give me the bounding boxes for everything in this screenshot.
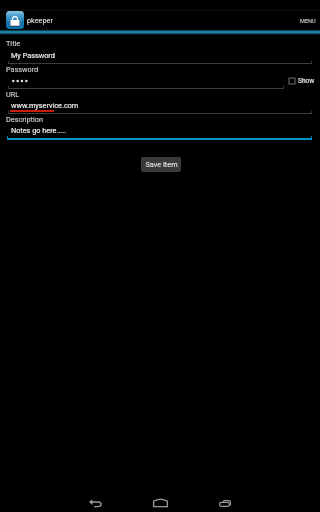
button[interactable]: Menu <box>296 13 320 29</box>
button[interactable]: Show <box>289 75 315 87</box>
staticText: Description <box>6 115 43 124</box>
staticText: URL <box>6 90 20 99</box>
button[interactable]: Home <box>129 486 191 512</box>
button[interactable]: Save Item <box>141 157 181 172</box>
button[interactable]: Recent apps <box>194 486 256 512</box>
staticText: pkeeper <box>27 16 53 25</box>
staticText: Title <box>6 39 21 48</box>
staticText: Password <box>6 65 39 74</box>
button[interactable]: Back <box>64 486 126 512</box>
staticText: www.myservice.com <box>11 101 79 110</box>
staticText: MENU <box>300 18 316 25</box>
staticText: My Password <box>11 51 55 60</box>
staticText: Show <box>298 77 315 85</box>
staticText: Notes go here..... <box>11 126 67 135</box>
staticText: Save Item <box>145 160 178 169</box>
